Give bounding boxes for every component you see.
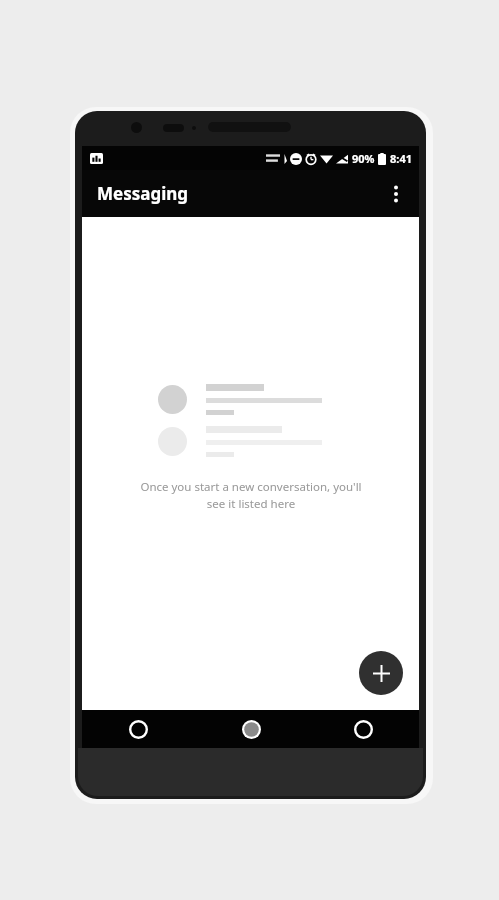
- staticText: Once you start a new conversation, you'l…: [136, 479, 366, 511]
- button[interactable]: Home: [195, 710, 307, 748]
- button[interactable]: New conversation: [359, 651, 403, 695]
- button[interactable]: Recents: [307, 710, 419, 748]
- button[interactable]: More options: [373, 171, 419, 217]
- button[interactable]: Back: [82, 710, 195, 748]
- staticText: 90%: [352, 151, 375, 166]
- staticText: Messaging: [97, 182, 189, 205]
- staticText: 8:41: [390, 151, 412, 166]
